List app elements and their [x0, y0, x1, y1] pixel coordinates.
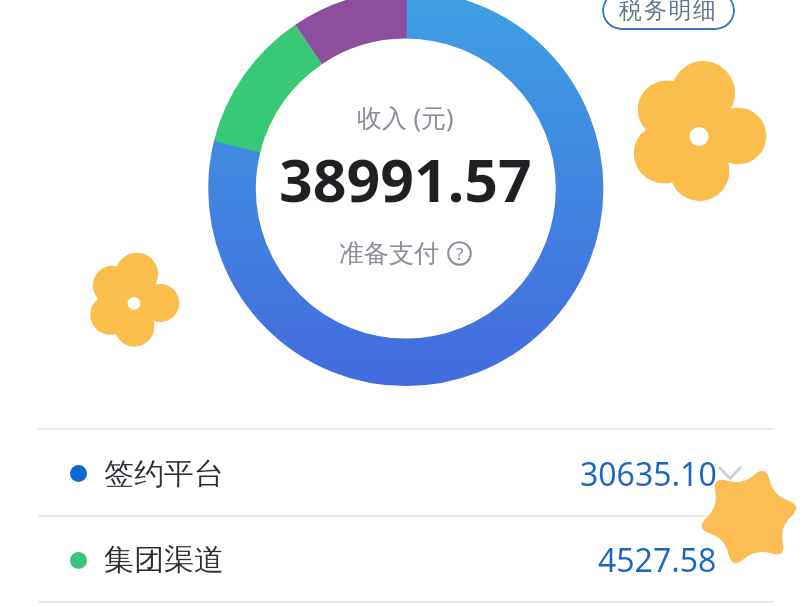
- staticText: 30635.10: [580, 452, 717, 496]
- button[interactable]: Expand: [714, 461, 746, 485]
- staticText: 收入 (元): [357, 100, 454, 134]
- button[interactable]: Help: [447, 241, 472, 266]
- staticText: 签约平台: [104, 455, 224, 493]
- button[interactable]: 集团渠道: [0, 517, 810, 603]
- staticText: 38991.57: [279, 139, 532, 219]
- staticText: 准备支付: [339, 238, 439, 269]
- button[interactable]: 税务明细: [602, 0, 735, 30]
- staticText: ?: [456, 242, 464, 265]
- staticText: 4527.58: [598, 538, 717, 582]
- button[interactable]: 签约平台: [0, 430, 810, 517]
- staticText: 集团渠道: [104, 541, 224, 579]
- staticText: 税务明细: [619, 0, 718, 25]
